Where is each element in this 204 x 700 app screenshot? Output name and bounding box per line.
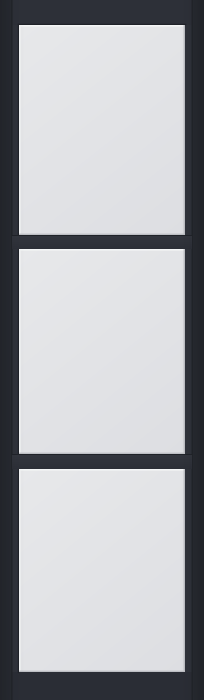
button[interactable]: Panelled door [0, 0, 204, 700]
button[interactable]: Middle glass panel [19, 249, 185, 454]
button[interactable]: Upper glass panel [19, 25, 185, 235]
button[interactable]: Lower glass panel [19, 469, 185, 672]
